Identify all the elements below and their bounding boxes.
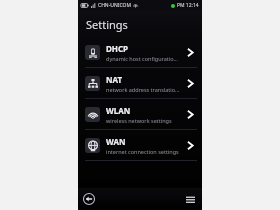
button[interactable]: Menu [183, 192, 197, 206]
staticText: wireless network settings [106, 117, 172, 124]
button[interactable]: Open DHCP [183, 45, 197, 59]
button[interactable]: Open WAN [183, 138, 197, 152]
staticText: WLAN [106, 105, 131, 116]
staticText: WAN [106, 136, 126, 147]
button[interactable]: Back [82, 192, 96, 206]
staticText: network address translation se… [106, 86, 180, 93]
staticText: NAT [106, 74, 123, 85]
staticText: internet connection settings [106, 148, 179, 155]
staticText: CHN-UNICOM [98, 2, 131, 9]
button[interactable]: Open WLAN [183, 107, 197, 121]
staticText: PM 12:14 [177, 2, 199, 9]
button[interactable]: WAN [78, 130, 202, 160]
button[interactable]: WLAN [78, 99, 202, 129]
button[interactable]: Open NAT [183, 76, 197, 90]
button[interactable]: NAT [78, 68, 202, 98]
staticText: Settings [86, 17, 128, 32]
staticText: dynamic host configuration se… [106, 55, 180, 62]
staticText: DHCP [106, 43, 129, 54]
button[interactable]: DHCP [78, 37, 202, 67]
